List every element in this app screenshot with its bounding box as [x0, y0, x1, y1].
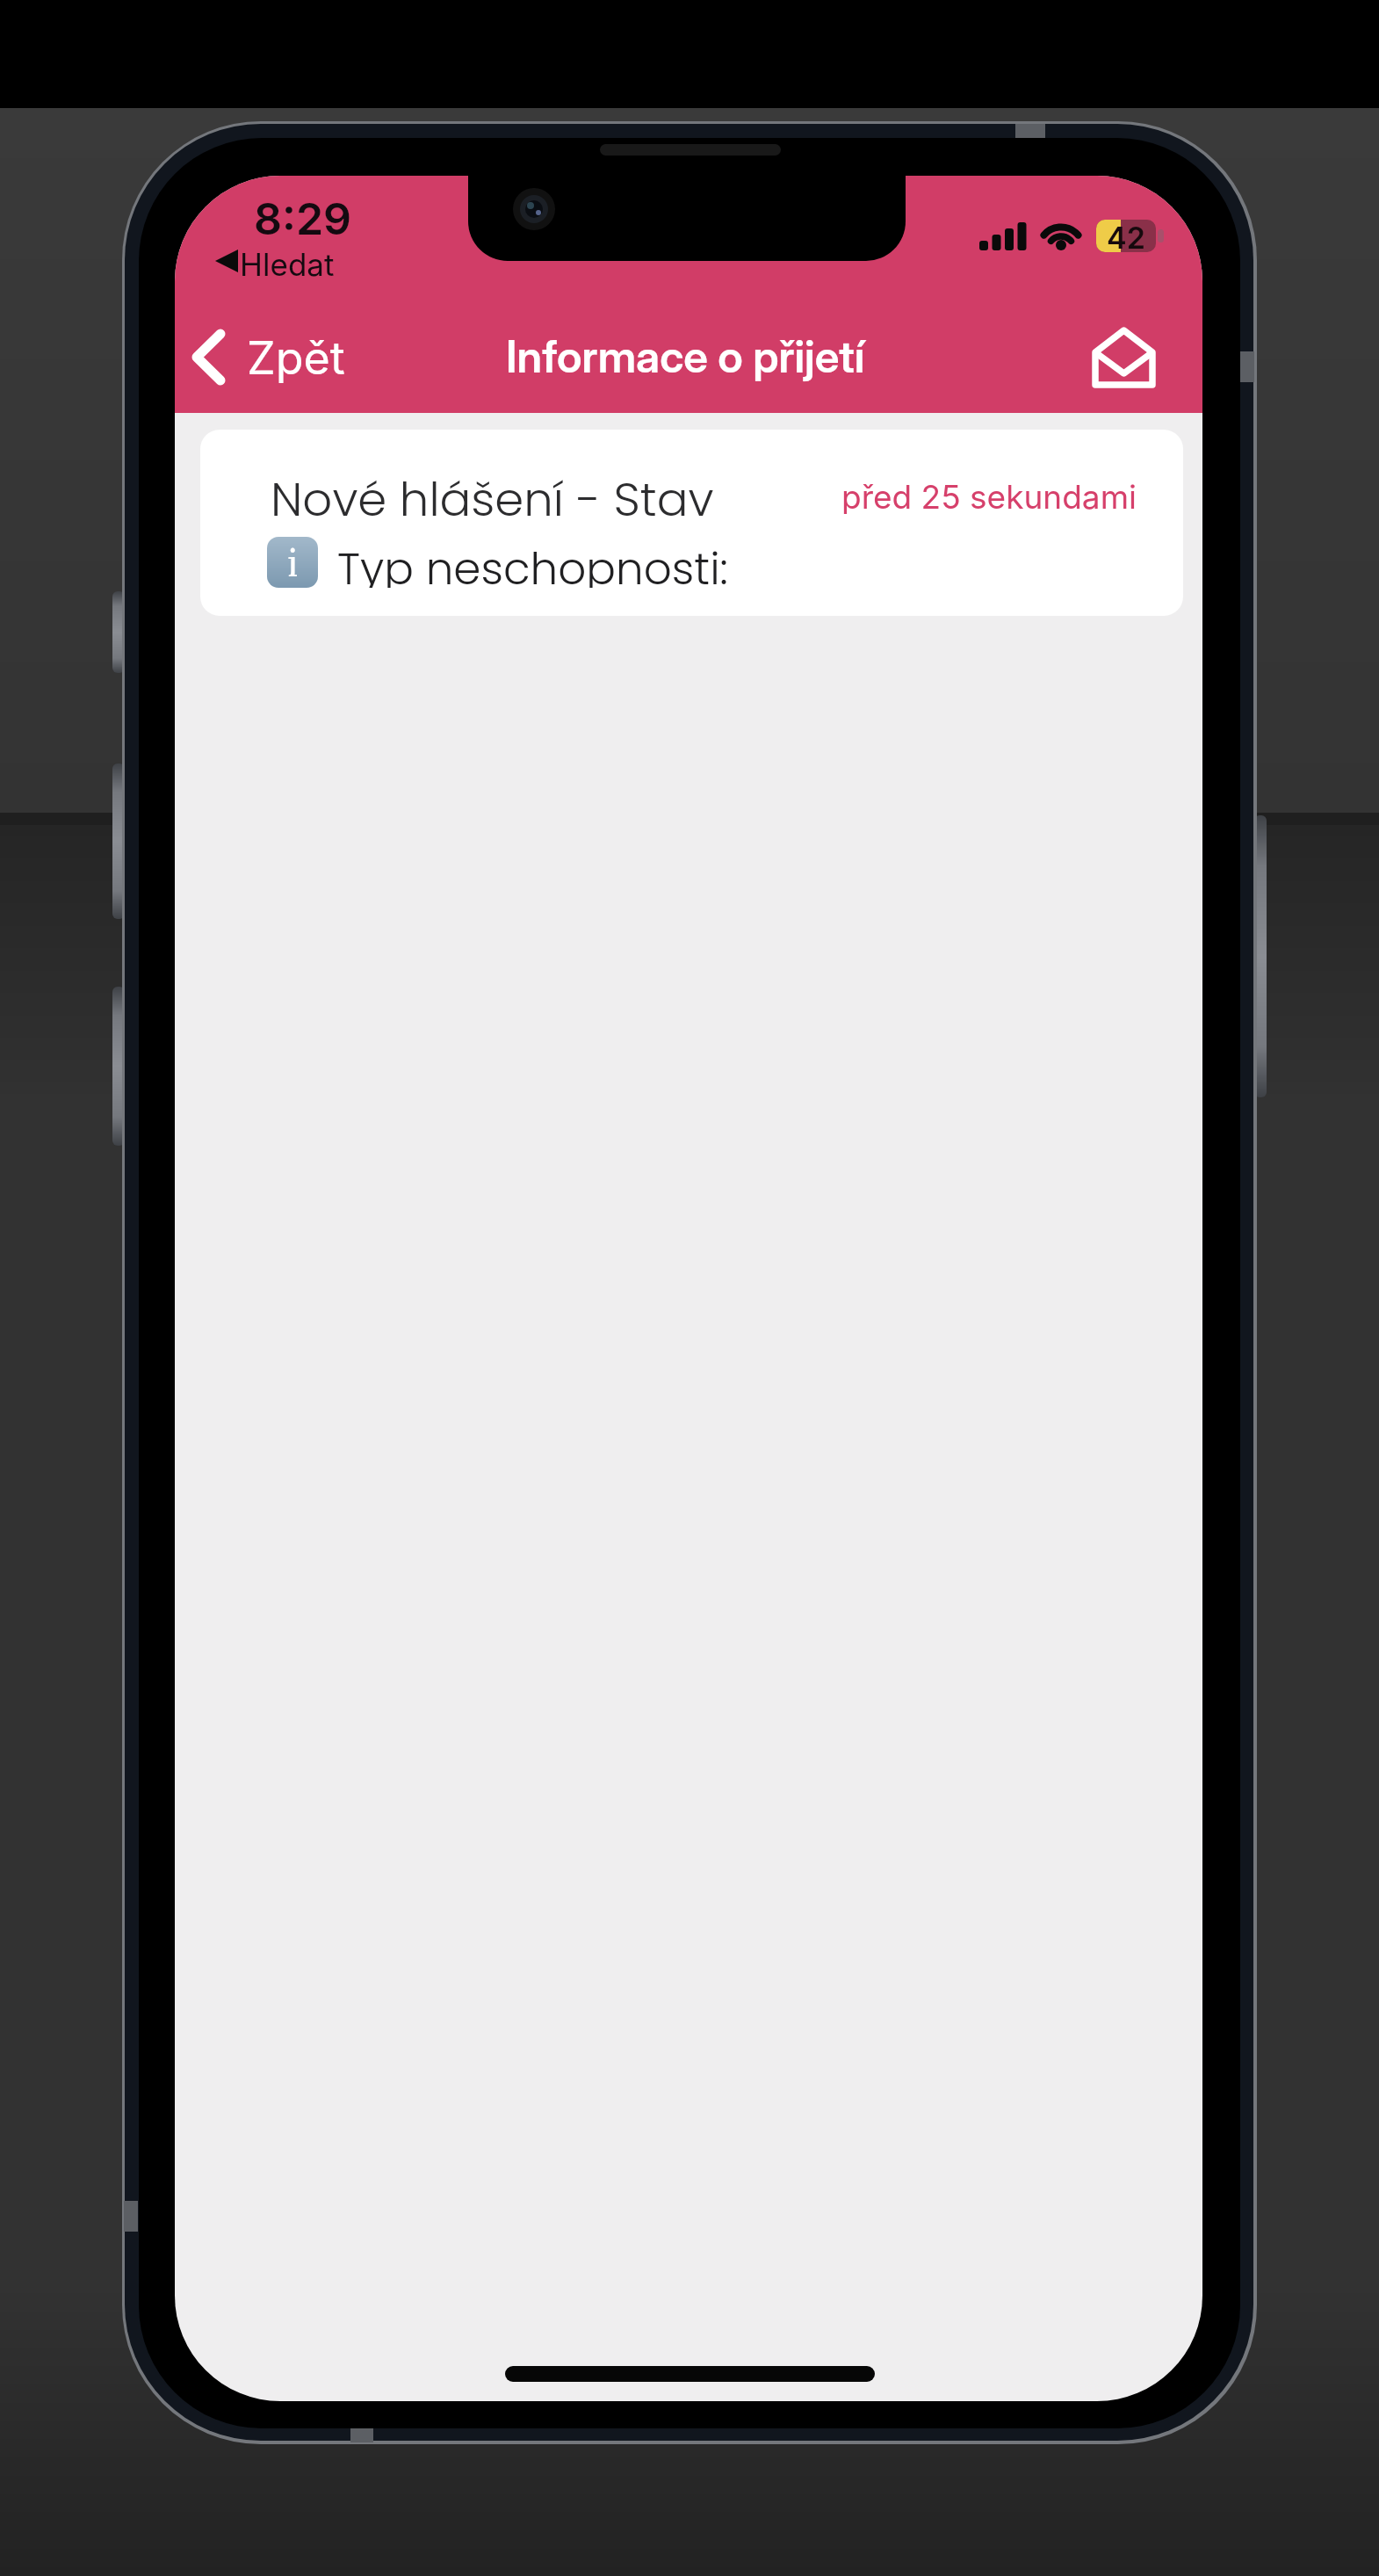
staticText: Informace o přijetí	[506, 330, 865, 383]
staticText: Typ neschopnosti:	[337, 539, 728, 588]
button[interactable]: Nové hlášení - Stav	[200, 430, 1183, 616]
staticText: Zpět	[247, 330, 345, 383]
staticText: Nové hlášení - Stav	[271, 467, 714, 516]
button[interactable]	[1086, 316, 1166, 397]
staticText: 8:29	[254, 192, 352, 242]
staticText: i	[287, 538, 299, 587]
button[interactable]	[184, 323, 360, 390]
staticText: 42	[1107, 220, 1145, 252]
staticText: před 25 sekundami	[841, 477, 1137, 514]
staticText: Hledat	[240, 246, 335, 283]
